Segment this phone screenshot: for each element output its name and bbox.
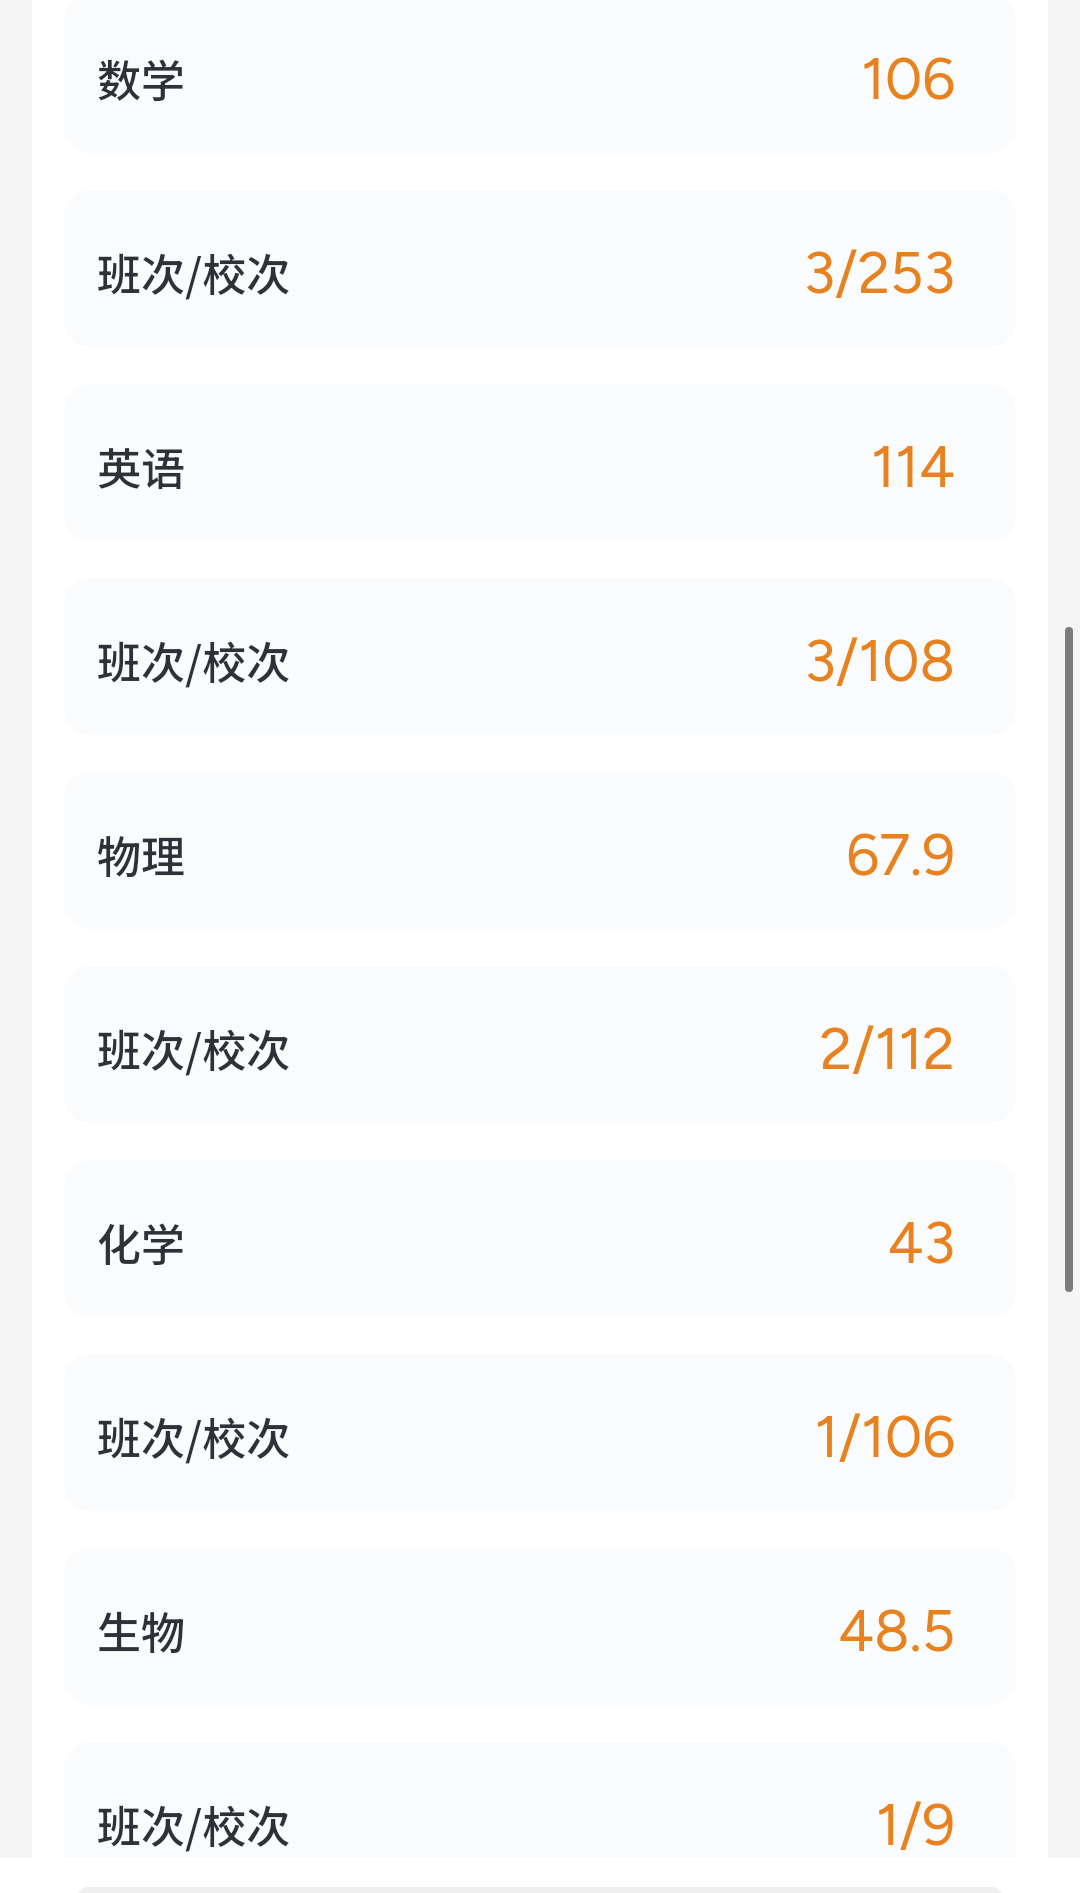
staticText: 114	[871, 432, 955, 502]
button[interactable]: 班次/校次	[64, 190, 1016, 347]
staticText: 43	[887, 1208, 955, 1278]
staticText: 班次/校次	[97, 1016, 291, 1080]
staticText: 2/112	[819, 1014, 955, 1084]
button[interactable]: 物理	[64, 772, 1016, 929]
button[interactable]: 班次/校次	[64, 966, 1016, 1123]
staticText: 3/108	[804, 626, 955, 696]
button[interactable]: 班次/校次	[64, 578, 1016, 735]
staticText: 1/106	[814, 1402, 955, 1472]
staticText: 化学	[97, 1210, 185, 1274]
button[interactable]: 化学	[64, 1160, 1016, 1317]
staticText: 班次/校次	[97, 628, 291, 692]
staticText: 106	[861, 44, 955, 114]
button[interactable]: 生物	[64, 1548, 1016, 1705]
staticText: 英语	[97, 434, 185, 498]
staticText: 3/253	[803, 238, 955, 308]
staticText: 班次/校次	[97, 240, 291, 304]
other: Scroll position	[1065, 627, 1073, 1292]
staticText: 班次/校次	[97, 1404, 291, 1468]
button[interactable]: 班次/校次	[64, 1742, 1016, 1858]
staticText: 数学	[97, 46, 185, 110]
button[interactable]: 英语	[64, 384, 1016, 541]
staticText: 1/9	[875, 1790, 955, 1858]
staticText: 生物	[97, 1598, 185, 1662]
button[interactable]: 班次/校次	[64, 1354, 1016, 1511]
button[interactable]: 数学	[64, 0, 1016, 153]
staticText: 48.5	[837, 1596, 955, 1666]
staticText: 班次/校次	[97, 1792, 291, 1856]
staticText: 物理	[97, 822, 185, 886]
staticText: 67.9	[846, 820, 955, 890]
